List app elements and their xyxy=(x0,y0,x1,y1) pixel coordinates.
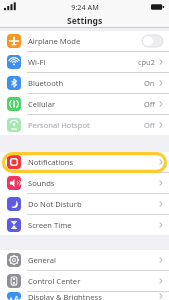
staticText: Personal Hotspot xyxy=(28,120,144,130)
staticText: Display & Brightness xyxy=(28,292,159,300)
staticText: Settings xyxy=(67,15,103,27)
staticText: Bluetooth xyxy=(28,78,144,88)
button[interactable]: Sounds xyxy=(0,173,169,193)
staticText: Off xyxy=(144,120,155,130)
staticText: Airplane Mode xyxy=(28,36,142,46)
button[interactable]: Personal Hotspot xyxy=(0,115,169,135)
staticText: 9:24 AM xyxy=(71,2,99,12)
staticText: On xyxy=(144,78,155,88)
button[interactable]: Airplane Mode xyxy=(0,31,169,51)
staticText: Screen Time xyxy=(28,220,159,230)
button[interactable]: Bluetooth xyxy=(0,73,169,93)
staticText: Control Center xyxy=(28,276,159,286)
other: Toggle xyxy=(142,35,163,47)
button[interactable]: Display & Brightness xyxy=(0,292,169,300)
staticText: cpu2 xyxy=(138,57,155,67)
button[interactable]: Control Center xyxy=(0,271,169,291)
staticText: Notifications xyxy=(28,157,159,167)
staticText: Sounds xyxy=(28,178,159,188)
button[interactable]: Cellular xyxy=(0,94,169,114)
button[interactable]: Notifications xyxy=(0,152,169,172)
staticText: General xyxy=(28,255,159,265)
staticText: Off xyxy=(144,99,155,109)
staticText: Wi-Fi xyxy=(28,57,138,67)
button[interactable]: Do Not Disturb xyxy=(0,194,169,214)
staticText: Cellular xyxy=(28,99,144,109)
staticText: Do Not Disturb xyxy=(28,199,159,209)
button[interactable]: Wi-Fi xyxy=(0,52,169,72)
button[interactable]: General xyxy=(0,250,169,270)
button[interactable]: Screen Time xyxy=(0,215,169,235)
